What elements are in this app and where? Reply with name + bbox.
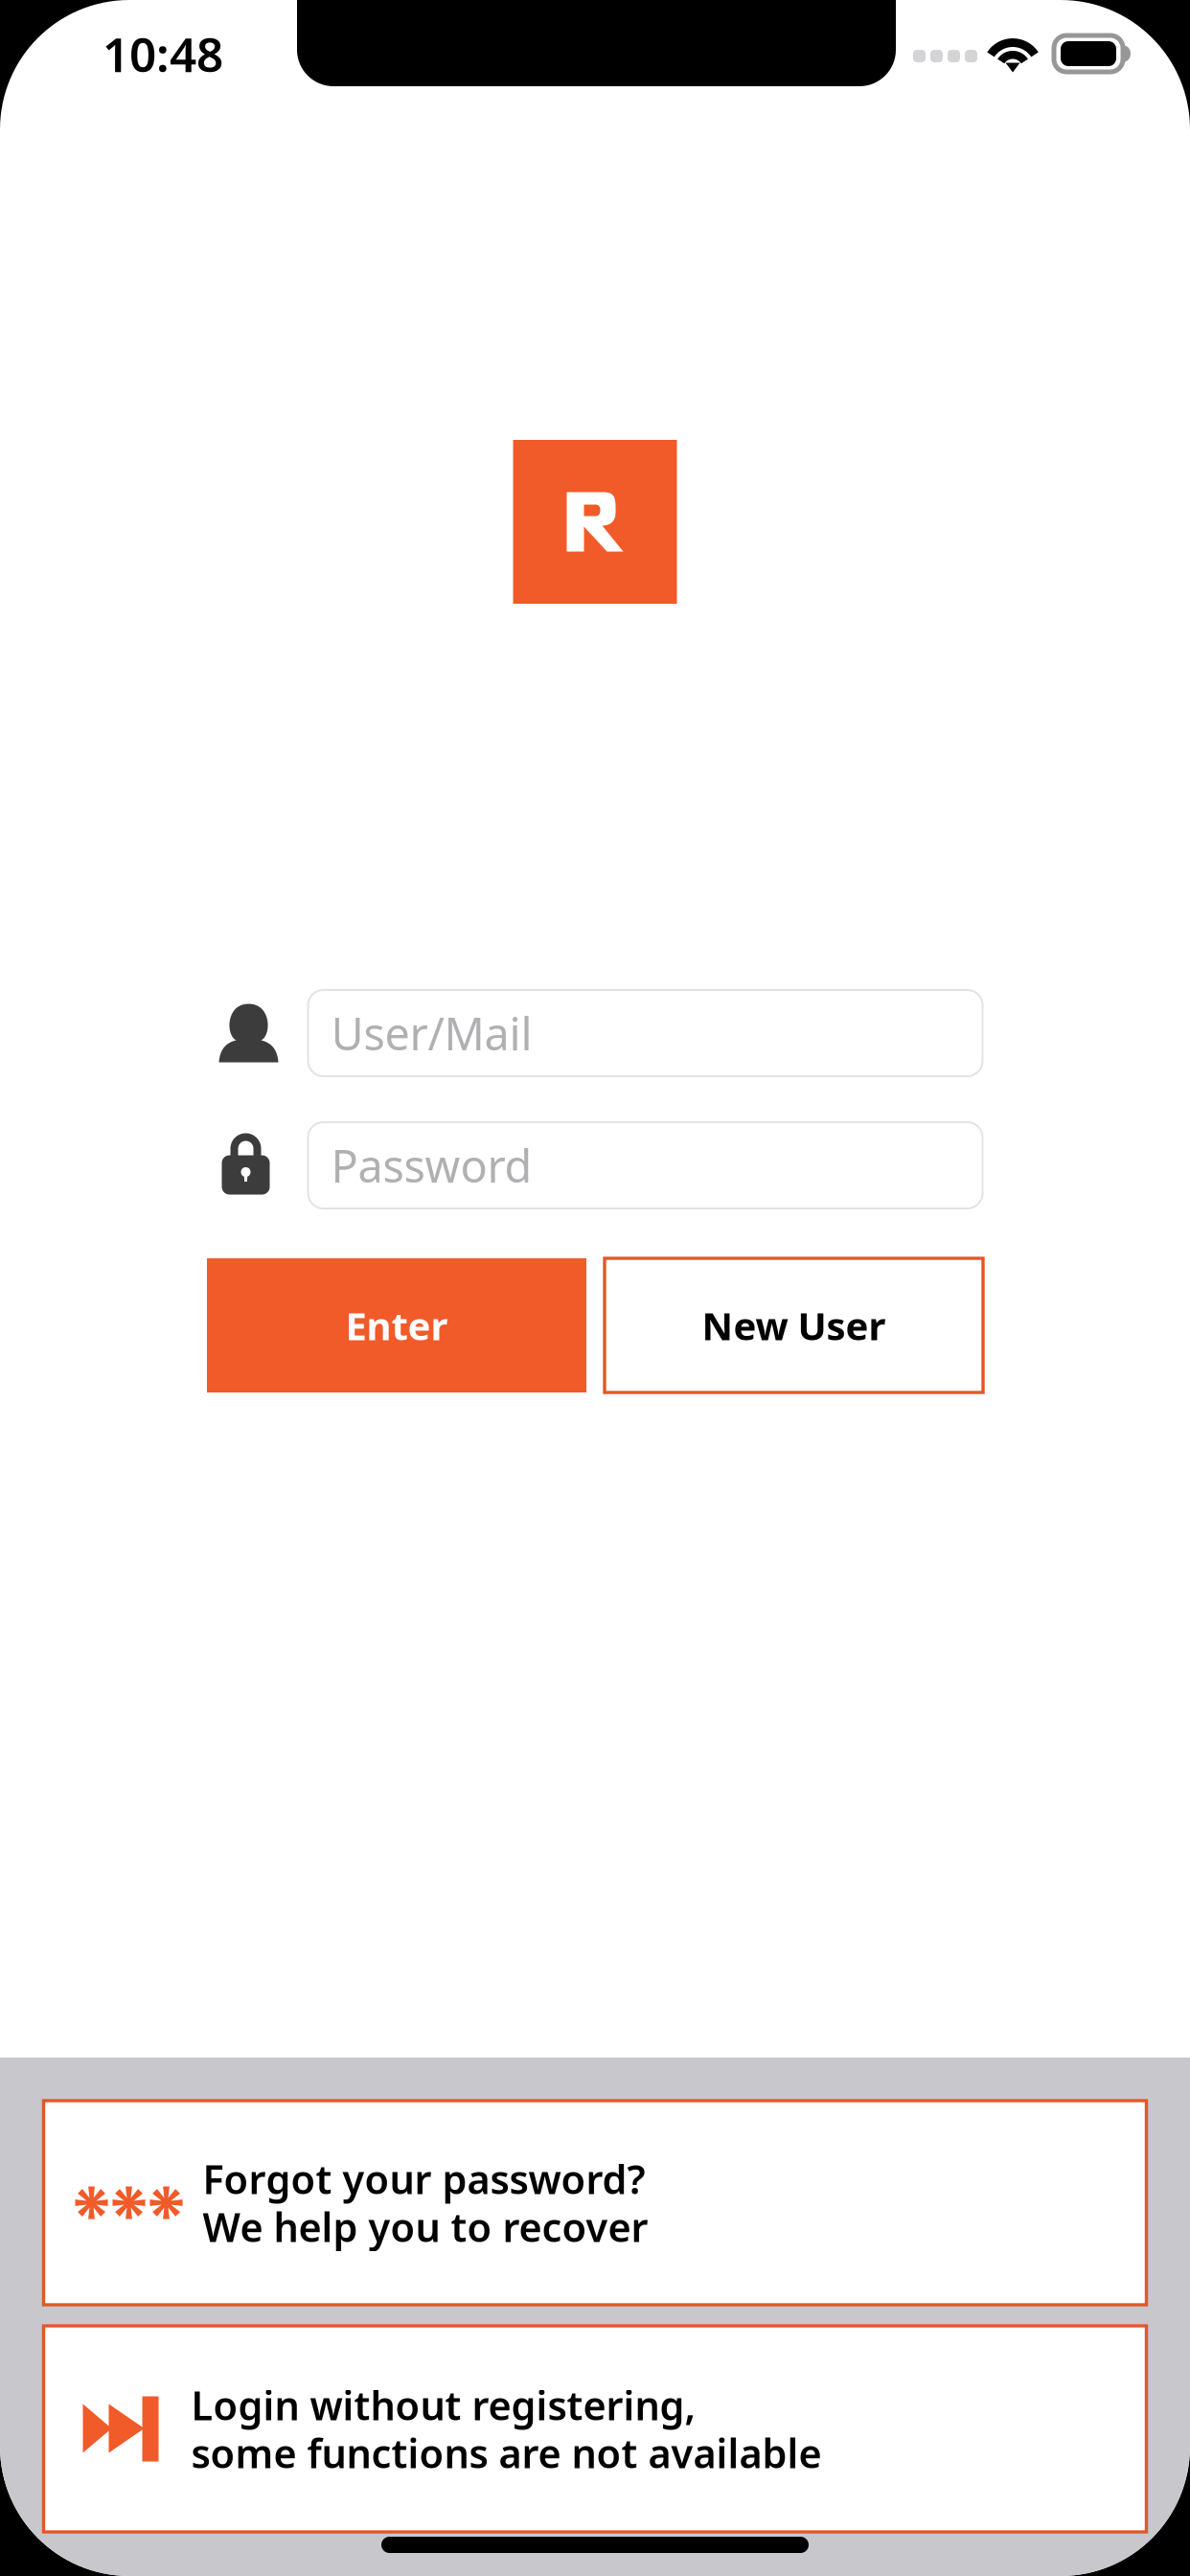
button[interactable]: Enter xyxy=(207,1258,586,1392)
staticText: Password xyxy=(331,1136,532,1195)
button[interactable]: Forgot your password? xyxy=(44,2101,1146,2305)
button[interactable]: New User xyxy=(605,1258,983,1392)
staticText: some functions are not available xyxy=(191,2426,822,2479)
staticText: Forgot your password? xyxy=(203,2153,645,2205)
staticText: Login without registering, xyxy=(191,2379,696,2431)
button[interactable]: User/Mail xyxy=(308,990,983,1076)
staticText: New User xyxy=(702,1300,886,1351)
button[interactable]: Login without registering, xyxy=(44,2326,1146,2532)
button[interactable]: Password xyxy=(308,1122,983,1208)
staticText: We help you to recover xyxy=(203,2200,648,2253)
staticText: Enter xyxy=(345,1300,448,1351)
staticText: User/Mail xyxy=(331,1003,532,1063)
staticText: 10:48 xyxy=(103,22,223,85)
